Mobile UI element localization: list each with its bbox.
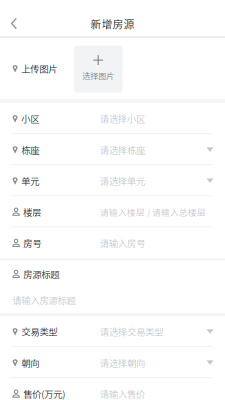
staticText: 请输入房源标题 [12, 293, 75, 307]
staticText: 请输入楼层 / 请输入总楼层 [100, 206, 206, 218]
staticText: 请选择小区 [100, 112, 145, 125]
staticText: 请输入房号 [100, 236, 145, 250]
button[interactable]: 房号 [0, 227, 225, 258]
button[interactable]: 朝向 [0, 347, 225, 378]
staticText: 交易类型 [21, 325, 57, 338]
button[interactable]: 单元 [0, 165, 225, 196]
staticText: 楼层 [23, 205, 41, 219]
staticText: 房源标题 [23, 267, 59, 281]
button[interactable]: 选择图片 [74, 46, 122, 93]
staticText: 上传图片 [21, 62, 57, 75]
staticText: 新增房源 [90, 16, 134, 31]
button[interactable]: 交易类型 [0, 316, 225, 347]
button[interactable]: 售价(万元) [0, 378, 225, 400]
button[interactable]: 栋座 [0, 134, 225, 165]
staticText: 房号 [23, 236, 41, 250]
staticText: 请选择栋座 [100, 143, 145, 156]
staticText: 小区 [21, 112, 39, 125]
staticText: 售价(万元) [23, 387, 65, 400]
staticText: 请选择朝向 [100, 356, 145, 369]
button[interactable]: 小区 [0, 103, 225, 134]
staticText: 选择图片 [82, 70, 114, 81]
button[interactable]: 房源标题 [0, 260, 225, 313]
staticText: 朝向 [21, 356, 39, 369]
staticText: 请选择交易类型 [100, 325, 163, 338]
button[interactable]: 楼层 [0, 196, 225, 227]
staticText: 请选择单元 [100, 174, 145, 187]
button[interactable]: 返回 [0, 11, 28, 36]
staticText: 栋座 [21, 143, 39, 156]
staticText: 请输入售价 [100, 387, 145, 400]
staticText: 单元 [21, 174, 39, 187]
